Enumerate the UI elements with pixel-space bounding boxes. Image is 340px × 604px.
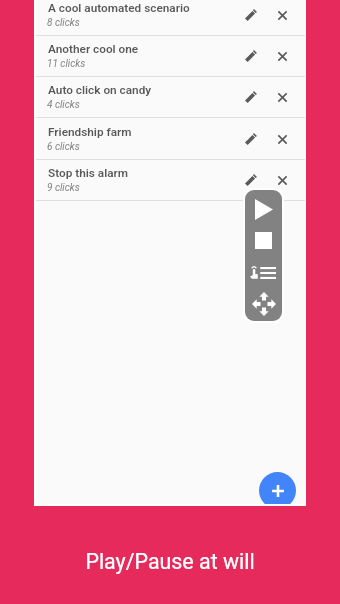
button[interactable]: Scenario list [245, 258, 282, 288]
staticText: 8 clicks [47, 17, 80, 26]
button[interactable]: Delete [266, 119, 298, 159]
button[interactable]: Move [245, 287, 282, 321]
staticText: 6 clicks [47, 141, 80, 150]
staticText: 11 clicks [47, 58, 86, 67]
button[interactable]: Edit [234, 77, 266, 117]
button[interactable]: Delete [266, 36, 298, 76]
button[interactable]: Edit [234, 36, 266, 76]
button[interactable]: Edit [234, 160, 266, 200]
button[interactable]: Delete [266, 0, 298, 35]
button[interactable]: Stop [245, 225, 282, 255]
staticText: 4 clicks [47, 99, 80, 108]
staticText: Friendship farm [48, 125, 132, 139]
staticText: 9 clicks [47, 182, 80, 191]
button[interactable]: Edit [234, 119, 266, 159]
button[interactable]: Add [259, 472, 296, 504]
button[interactable]: Edit [234, 0, 266, 35]
button[interactable]: A cool automated scenario [36, 0, 305, 36]
staticText: Auto click on candy [48, 83, 152, 97]
button[interactable]: Delete [266, 160, 298, 200]
button[interactable]: Play [245, 190, 282, 228]
staticText: A cool automated scenario [48, 1, 190, 15]
button[interactable]: Friendship farm [36, 119, 305, 160]
button[interactable]: Another cool one [36, 36, 305, 77]
button[interactable]: Play/Pause at will [0, 549, 340, 574]
staticText: Another cool one [48, 42, 139, 56]
button[interactable]: Delete [266, 77, 298, 117]
staticText: Stop this alarm [48, 166, 129, 180]
button[interactable]: Auto click on candy [36, 77, 305, 118]
button[interactable]: Stop this alarm [36, 160, 305, 201]
